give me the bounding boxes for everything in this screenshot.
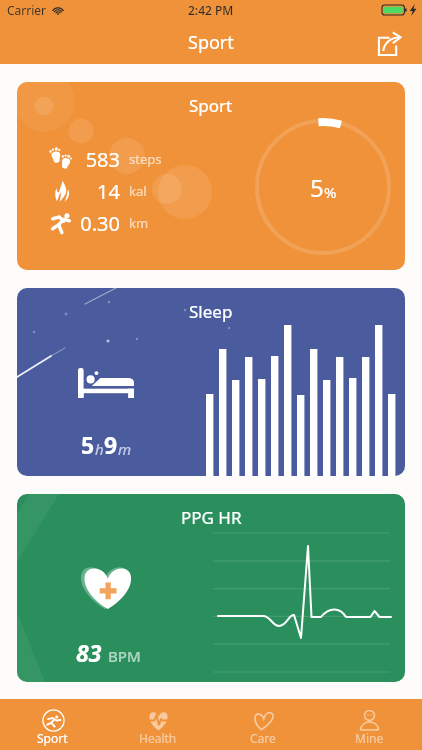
staticText: Health [139, 730, 177, 746]
button[interactable]: Sport [0, 699, 105, 750]
staticText: 14 [97, 178, 120, 205]
staticText: 0.30 [80, 210, 120, 237]
staticText: 9 [104, 429, 118, 460]
staticText: 5 [310, 171, 324, 204]
staticText: Sport [37, 730, 68, 746]
staticText: Sport [189, 94, 233, 117]
button[interactable]: PPG HR [17, 494, 405, 682]
staticText: 583 [85, 146, 120, 173]
staticText: Sport [188, 30, 234, 55]
button[interactable]: Sport [17, 82, 405, 270]
button[interactable]: Sleep [17, 288, 405, 476]
staticText: 5 [81, 429, 95, 460]
staticText: Mine [355, 730, 384, 746]
staticText: Carrier [7, 2, 47, 18]
button[interactable]: Mine [316, 699, 422, 750]
button[interactable]: Health [105, 699, 210, 750]
staticText: PPG HR [181, 506, 242, 529]
staticText: steps [129, 150, 162, 168]
staticText: Care [250, 730, 276, 746]
button[interactable]: Share [375, 23, 413, 61]
staticText: % [324, 182, 337, 202]
staticText: kal [129, 182, 147, 200]
staticText: Sleep [189, 300, 233, 323]
staticText: 2:42 PM [188, 2, 234, 18]
staticText: 83 [76, 637, 102, 668]
staticText: BPM [108, 646, 141, 666]
staticText: h [95, 439, 104, 459]
staticText: km [129, 214, 149, 232]
staticText: m [118, 439, 132, 459]
button[interactable]: Care [210, 699, 316, 750]
